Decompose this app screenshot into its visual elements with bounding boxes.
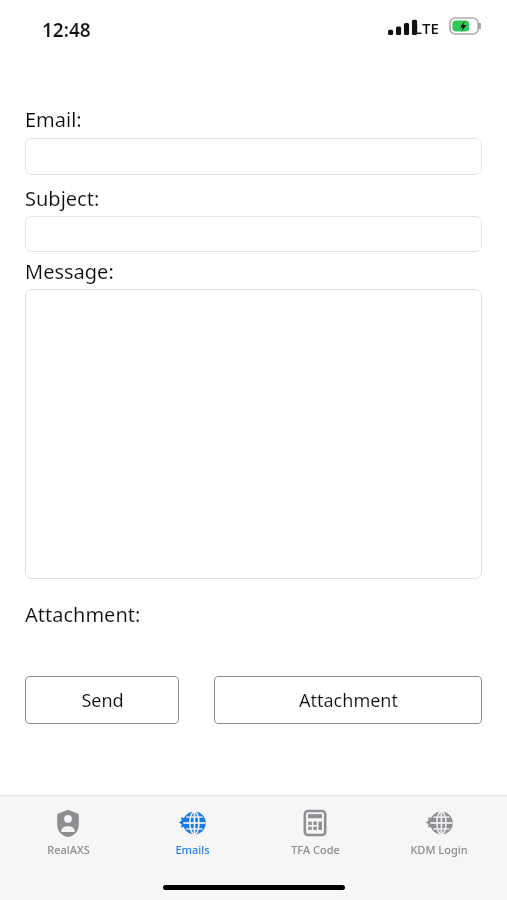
staticText: Message: xyxy=(25,258,114,285)
button[interactable]: Send xyxy=(25,676,179,724)
staticText: TFA Code xyxy=(291,842,340,857)
staticText: Send xyxy=(81,688,124,713)
staticText: Attachment xyxy=(299,688,398,713)
button[interactable]: RealAXS xyxy=(13,808,123,857)
staticText: Attachment: xyxy=(25,601,141,628)
staticText: KDM Login xyxy=(410,842,468,857)
button[interactable] xyxy=(25,289,482,579)
button[interactable]: Emails xyxy=(137,808,247,857)
button[interactable]: Attachment xyxy=(214,676,482,724)
staticText: Email: xyxy=(25,106,82,133)
button[interactable]: TFA Code xyxy=(260,808,370,857)
button[interactable] xyxy=(25,138,482,175)
staticText: Emails xyxy=(175,842,210,857)
staticText: RealAXS xyxy=(47,842,90,857)
staticText: Subject: xyxy=(25,185,100,212)
staticText: 12:48 xyxy=(42,17,91,43)
button[interactable] xyxy=(25,216,482,252)
staticText: LTE xyxy=(414,18,439,38)
button[interactable]: KDM Login xyxy=(384,808,494,857)
